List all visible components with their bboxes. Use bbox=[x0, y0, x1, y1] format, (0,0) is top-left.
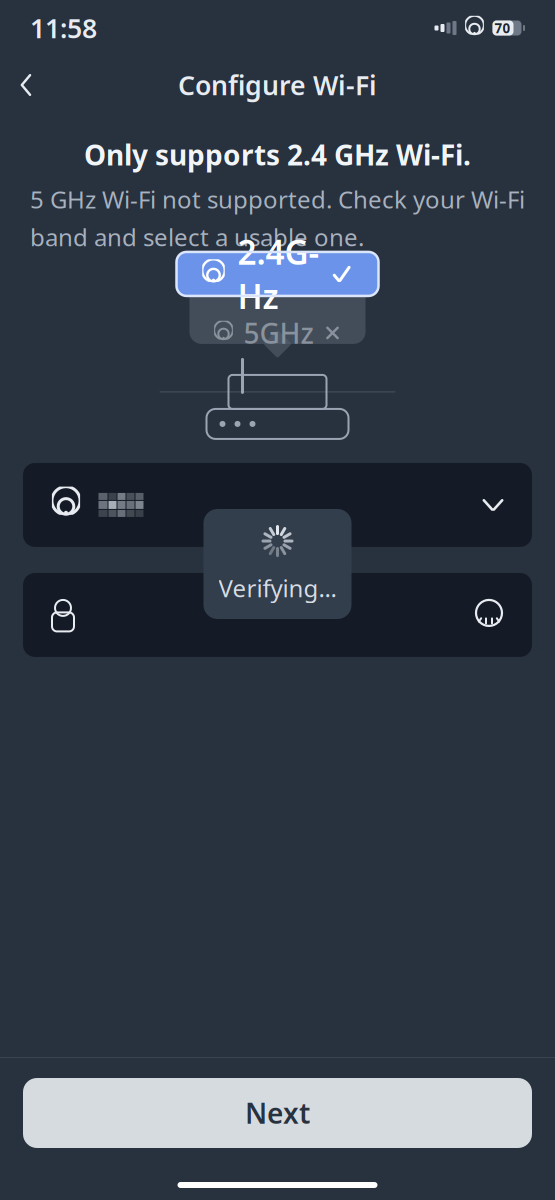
staticText: 2.4GHz bbox=[237, 230, 319, 318]
button[interactable] bbox=[23, 463, 532, 547]
button[interactable]: Back bbox=[0, 61, 52, 109]
staticText: Verifying... bbox=[218, 572, 336, 604]
staticText: Only supports 2.4 GHz Wi-Fi. bbox=[84, 136, 471, 173]
staticText: 5 GHz Wi-Fi not supported. Check your Wi… bbox=[30, 183, 525, 253]
staticText: 5GHz bbox=[243, 314, 313, 351]
staticText: 70 bbox=[494, 19, 510, 37]
button[interactable]: Next bbox=[23, 1078, 532, 1148]
staticText: Configure Wi-Fi bbox=[178, 67, 377, 103]
staticText: Next bbox=[245, 1094, 310, 1132]
button[interactable] bbox=[23, 573, 532, 657]
staticText: 11:58 bbox=[30, 10, 97, 46]
